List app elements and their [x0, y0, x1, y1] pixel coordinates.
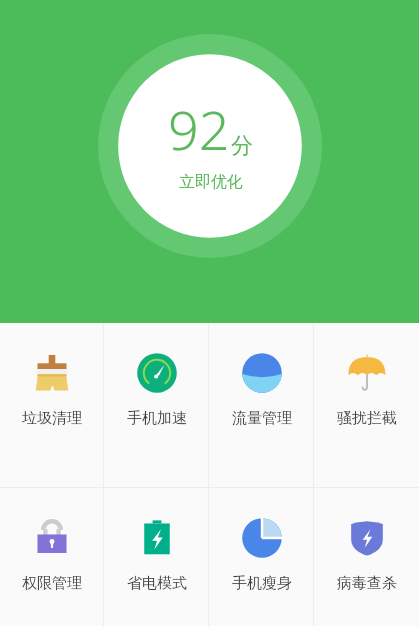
button[interactable]: 流量管理	[209, 323, 314, 487]
staticText: 流量管理	[232, 409, 292, 428]
staticText: 省电模式	[127, 574, 187, 593]
button[interactable]: 垃圾清理	[0, 323, 104, 487]
button[interactable]: 手机瘦身	[209, 488, 314, 626]
button[interactable]: 权限管理	[0, 488, 104, 626]
button[interactable]: 骚扰拦截	[314, 323, 419, 487]
button[interactable]: 病毒查杀	[314, 488, 419, 626]
staticText: 病毒查杀	[337, 574, 397, 593]
button[interactable]: 92	[98, 34, 322, 258]
staticText: 立即优化	[179, 172, 243, 192]
button[interactable]: 手机加速	[104, 323, 209, 487]
staticText: 92	[168, 92, 230, 166]
staticText: 权限管理	[22, 574, 82, 593]
staticText: 手机瘦身	[232, 574, 292, 593]
button[interactable]: 省电模式	[104, 488, 209, 626]
staticText: 垃圾清理	[22, 409, 82, 428]
staticText: 骚扰拦截	[337, 409, 397, 428]
staticText: 分	[231, 132, 253, 160]
staticText: 手机加速	[127, 409, 187, 428]
